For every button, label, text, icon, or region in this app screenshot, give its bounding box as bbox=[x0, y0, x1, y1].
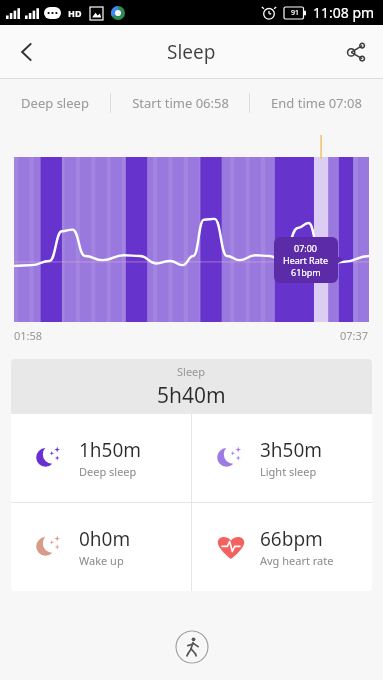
staticText: 07:37 bbox=[340, 328, 369, 343]
staticText: 66bpm bbox=[260, 526, 323, 552]
staticText: HD bbox=[68, 7, 82, 19]
staticText: Wake up bbox=[79, 553, 124, 568]
button[interactable]: 0h0m bbox=[11, 503, 191, 591]
staticText: 91 bbox=[291, 8, 300, 18]
button[interactable]: 66bpm bbox=[192, 503, 372, 591]
button[interactable]: Back bbox=[0, 25, 54, 79]
staticText: End time 07:08 bbox=[271, 94, 362, 112]
button[interactable]: 3h50m bbox=[192, 414, 372, 502]
staticText: 5h40m bbox=[157, 381, 226, 410]
staticText: 07:00 bbox=[294, 242, 318, 254]
staticText: 01:58 bbox=[14, 328, 43, 343]
button[interactable]: Steps bbox=[175, 630, 209, 664]
staticText: 61bpm bbox=[291, 266, 321, 278]
staticText: 0h0m bbox=[79, 526, 131, 552]
staticText: Sleep bbox=[177, 364, 206, 379]
staticText: Deep sleep bbox=[21, 94, 89, 112]
staticText: 1h50m bbox=[79, 437, 142, 463]
staticText: 11:08 pm bbox=[313, 3, 375, 22]
staticText: Deep sleep bbox=[79, 464, 137, 479]
staticText: Heart Rate bbox=[283, 254, 329, 266]
staticText: Sleep bbox=[167, 39, 216, 65]
staticText: Avg heart rate bbox=[260, 553, 334, 568]
button[interactable]: Share bbox=[329, 25, 383, 79]
staticText: Light sleep bbox=[260, 464, 317, 479]
staticText: 3h50m bbox=[260, 437, 323, 463]
button[interactable]: 1h50m bbox=[11, 414, 191, 502]
staticText: Start time 06:58 bbox=[132, 94, 229, 112]
